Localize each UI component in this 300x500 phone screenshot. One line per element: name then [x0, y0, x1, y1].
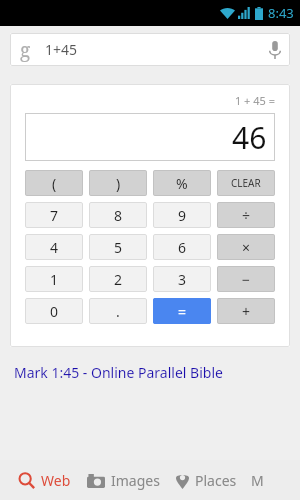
button[interactable]: −: [217, 266, 275, 292]
staticText: 2: [114, 270, 123, 289]
staticText: ÷: [242, 206, 251, 225]
button[interactable]: 0: [25, 298, 83, 324]
staticText: M: [251, 471, 264, 490]
button[interactable]: =: [153, 298, 211, 324]
button[interactable]: .: [89, 298, 147, 324]
staticText: =: [178, 302, 187, 321]
button[interactable]: (: [25, 170, 83, 196]
button[interactable]: Images: [87, 471, 160, 490]
staticText: Images: [111, 471, 160, 490]
staticText: 6: [178, 238, 187, 257]
staticText: 0: [50, 302, 59, 321]
button[interactable]: ): [89, 170, 147, 196]
staticText: 9: [178, 206, 187, 225]
staticText: Places: [195, 471, 237, 490]
staticText: 5: [114, 238, 123, 257]
button[interactable]: ×: [217, 234, 275, 260]
staticText: 8: [114, 206, 123, 225]
staticText: %: [176, 174, 188, 193]
staticText: +: [242, 302, 251, 321]
button[interactable]: M: [251, 471, 264, 490]
button[interactable]: CLEAR: [217, 170, 275, 196]
button[interactable]: 8: [89, 202, 147, 228]
button[interactable]: Voice search: [260, 35, 290, 65]
button[interactable]: 7: [25, 202, 83, 228]
staticText: CLEAR: [231, 176, 261, 190]
button[interactable]: 6: [153, 234, 211, 260]
button[interactable]: +: [217, 298, 275, 324]
button[interactable]: 3: [153, 266, 211, 292]
staticText: g: [20, 37, 31, 63]
button[interactable]: 4: [25, 234, 83, 260]
staticText: (: [52, 174, 57, 193]
button[interactable]: Places: [176, 471, 237, 490]
staticText: 3: [178, 270, 187, 289]
staticText: 8:43: [268, 4, 294, 22]
button[interactable]: Web: [18, 471, 71, 490]
staticText: 4: [50, 238, 59, 257]
staticText: 1 + 45 =: [25, 93, 275, 108]
button[interactable]: 2: [89, 266, 147, 292]
staticText: ): [116, 174, 121, 193]
staticText: ×: [242, 238, 251, 257]
staticText: −: [242, 270, 251, 289]
button[interactable]: ÷: [217, 202, 275, 228]
staticText: 1: [50, 270, 59, 289]
staticText: 46: [232, 117, 267, 158]
staticText: 7: [50, 206, 59, 225]
button[interactable]: g: [10, 33, 290, 66]
staticText: Mark 1:45 - Online Parallel Bible: [14, 363, 223, 382]
button[interactable]: %: [153, 170, 211, 196]
staticText: .: [116, 302, 120, 321]
staticText: Web: [41, 471, 71, 490]
staticText: 1+45: [45, 40, 78, 59]
button[interactable]: 5: [89, 234, 147, 260]
button[interactable]: 9: [153, 202, 211, 228]
button[interactable]: 1: [25, 266, 83, 292]
